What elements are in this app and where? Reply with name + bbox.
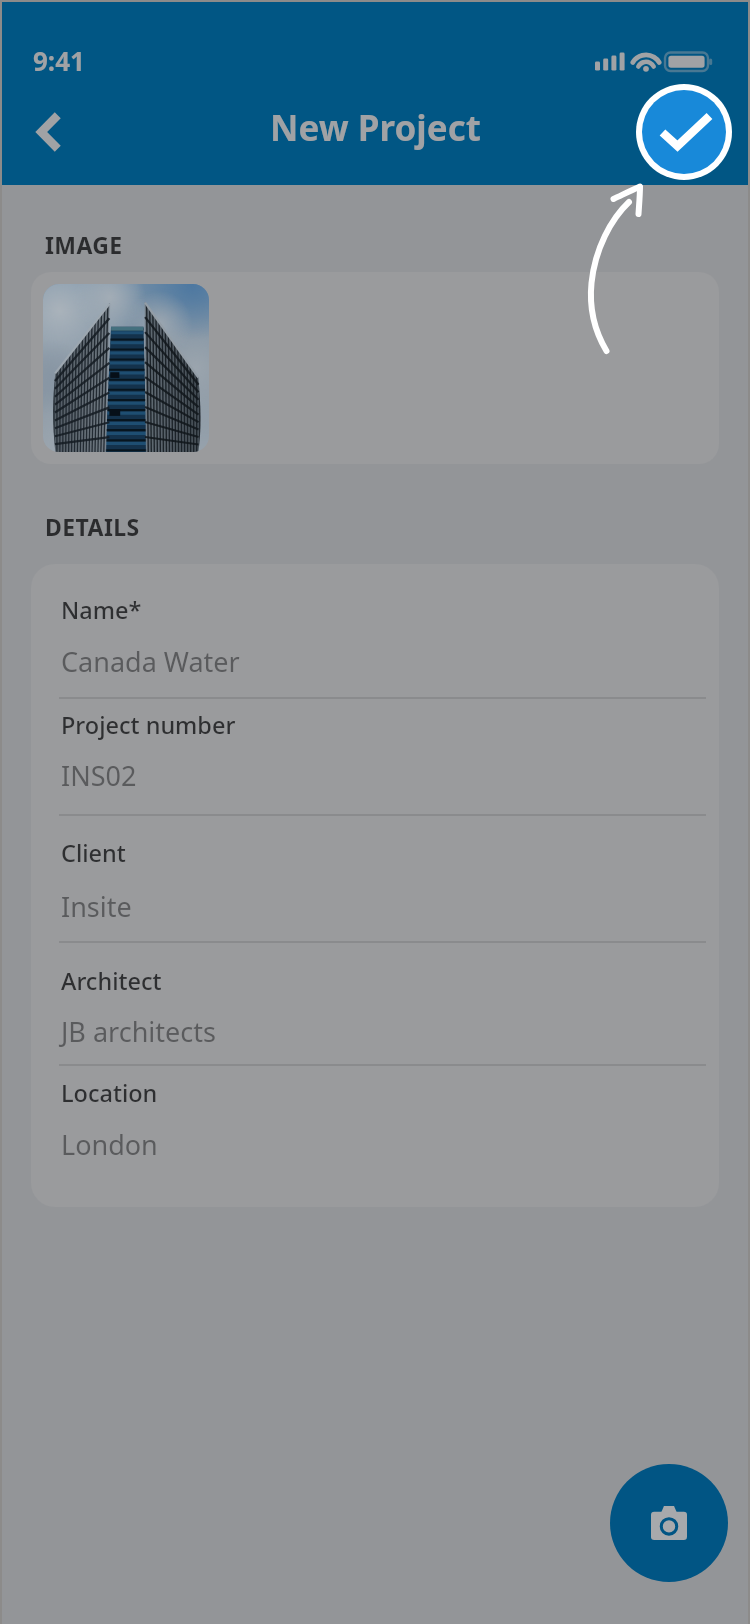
staticText: IMAGE [45,229,123,260]
staticText: Insite [61,888,132,925]
staticText: JB architects [61,1013,216,1050]
button[interactable] [59,568,706,697]
button[interactable] [59,816,706,941]
staticText: Client [61,837,126,869]
staticText: Location [61,1077,158,1109]
staticText: INS02 [61,757,137,794]
staticText: DETAILS [45,511,140,542]
button[interactable] [59,943,706,1064]
staticText: Canada Water [61,643,240,680]
button[interactable]: Save [642,90,726,174]
button[interactable]: Project image [43,284,209,452]
button[interactable] [59,1066,706,1196]
button[interactable]: Take photo [610,1464,728,1582]
staticText: 9:41 [33,43,85,78]
staticText: New Project [270,104,481,152]
staticText: Architect [61,965,162,997]
button[interactable] [59,699,706,814]
button[interactable]: Back [10,94,86,170]
staticText: Project number [61,709,236,741]
staticText: London [61,1126,158,1163]
staticText: Name* [61,594,142,626]
